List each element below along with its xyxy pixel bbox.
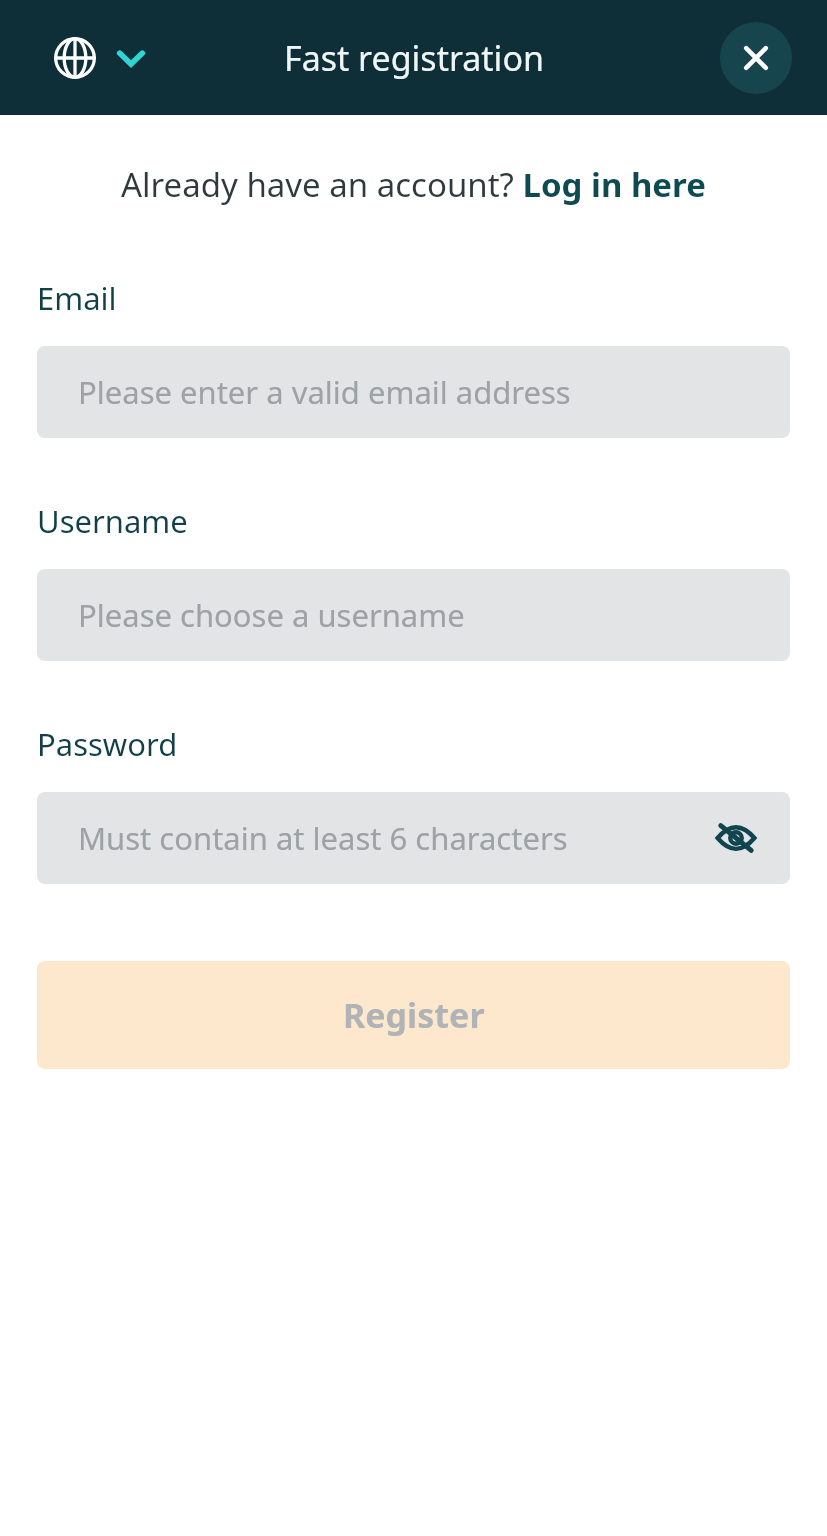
button[interactable]: Close: [720, 22, 792, 94]
staticText: Already have an account? Log in here: [121, 162, 706, 207]
button[interactable]: Show password: [704, 806, 768, 870]
button[interactable]: Register: [37, 961, 790, 1069]
button[interactable]: Change language: [44, 27, 158, 89]
staticText: Must contain at least 6 characters: [78, 817, 704, 859]
button[interactable]: Already have an account? Log in here: [115, 158, 712, 211]
staticText: Username: [37, 500, 188, 542]
staticText: Register: [343, 992, 485, 1038]
staticText: Please choose a username: [78, 594, 790, 636]
button[interactable]: Please choose a username: [37, 569, 790, 661]
staticText: Fast registration: [284, 35, 544, 81]
staticText: Please enter a valid email address: [78, 371, 790, 413]
staticText: Password: [37, 723, 178, 765]
button[interactable]: Please enter a valid email address: [37, 346, 790, 438]
button[interactable]: Must contain at least 6 characters: [37, 792, 790, 884]
staticText: Email: [37, 277, 117, 319]
